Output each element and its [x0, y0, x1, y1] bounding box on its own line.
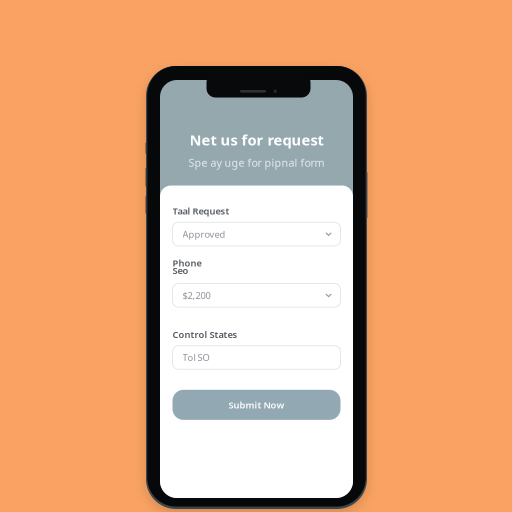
staticText: Approved	[182, 228, 225, 240]
button[interactable]: Tol SO	[172, 346, 340, 369]
staticText: Net us for request	[189, 130, 323, 149]
staticText: $2,200	[182, 289, 210, 301]
staticText: Phone	[172, 257, 201, 269]
staticText: Submit Now	[228, 399, 284, 411]
staticText: Taal Request	[172, 205, 229, 217]
button[interactable]: $2,200	[172, 283, 340, 307]
button[interactable]: Approved	[172, 222, 340, 246]
staticText: Spe ay uge for pipnal form	[188, 155, 324, 170]
staticText: Control States	[172, 328, 237, 341]
button[interactable]: Submit Now	[172, 390, 340, 420]
staticText: Seo	[172, 264, 188, 277]
staticText: Tol SO	[182, 351, 209, 364]
